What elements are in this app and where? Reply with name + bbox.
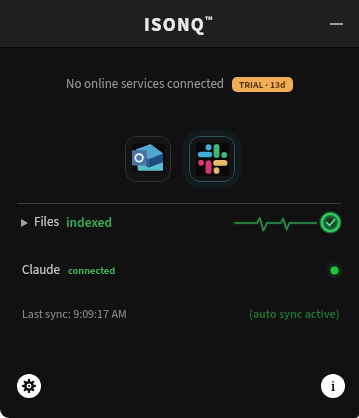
staticText: Files	[34, 213, 59, 232]
button[interactable]: TRIAL · 13d	[232, 77, 293, 92]
button[interactable]: Info	[321, 374, 345, 398]
staticText: No online services connected	[66, 75, 225, 94]
staticText: ISONQ	[144, 12, 205, 39]
button[interactable]: Files	[0, 204, 359, 241]
button[interactable]: Outlook	[125, 136, 171, 182]
staticText: Claude	[22, 261, 61, 280]
staticText: Last sync: 9:09:17 AM	[22, 306, 127, 323]
button[interactable]: Claude	[0, 255, 359, 285]
button[interactable]: Slack	[189, 136, 235, 182]
button[interactable]: Settings	[17, 374, 41, 398]
button[interactable]: Minimize	[323, 11, 349, 37]
staticText: indexed	[66, 213, 113, 232]
staticText: i	[331, 378, 336, 394]
staticText: TRIAL · 13d	[239, 78, 286, 92]
staticText: ™	[205, 13, 213, 29]
staticText: connected	[68, 263, 116, 278]
staticText: (auto sync active)	[249, 306, 340, 323]
